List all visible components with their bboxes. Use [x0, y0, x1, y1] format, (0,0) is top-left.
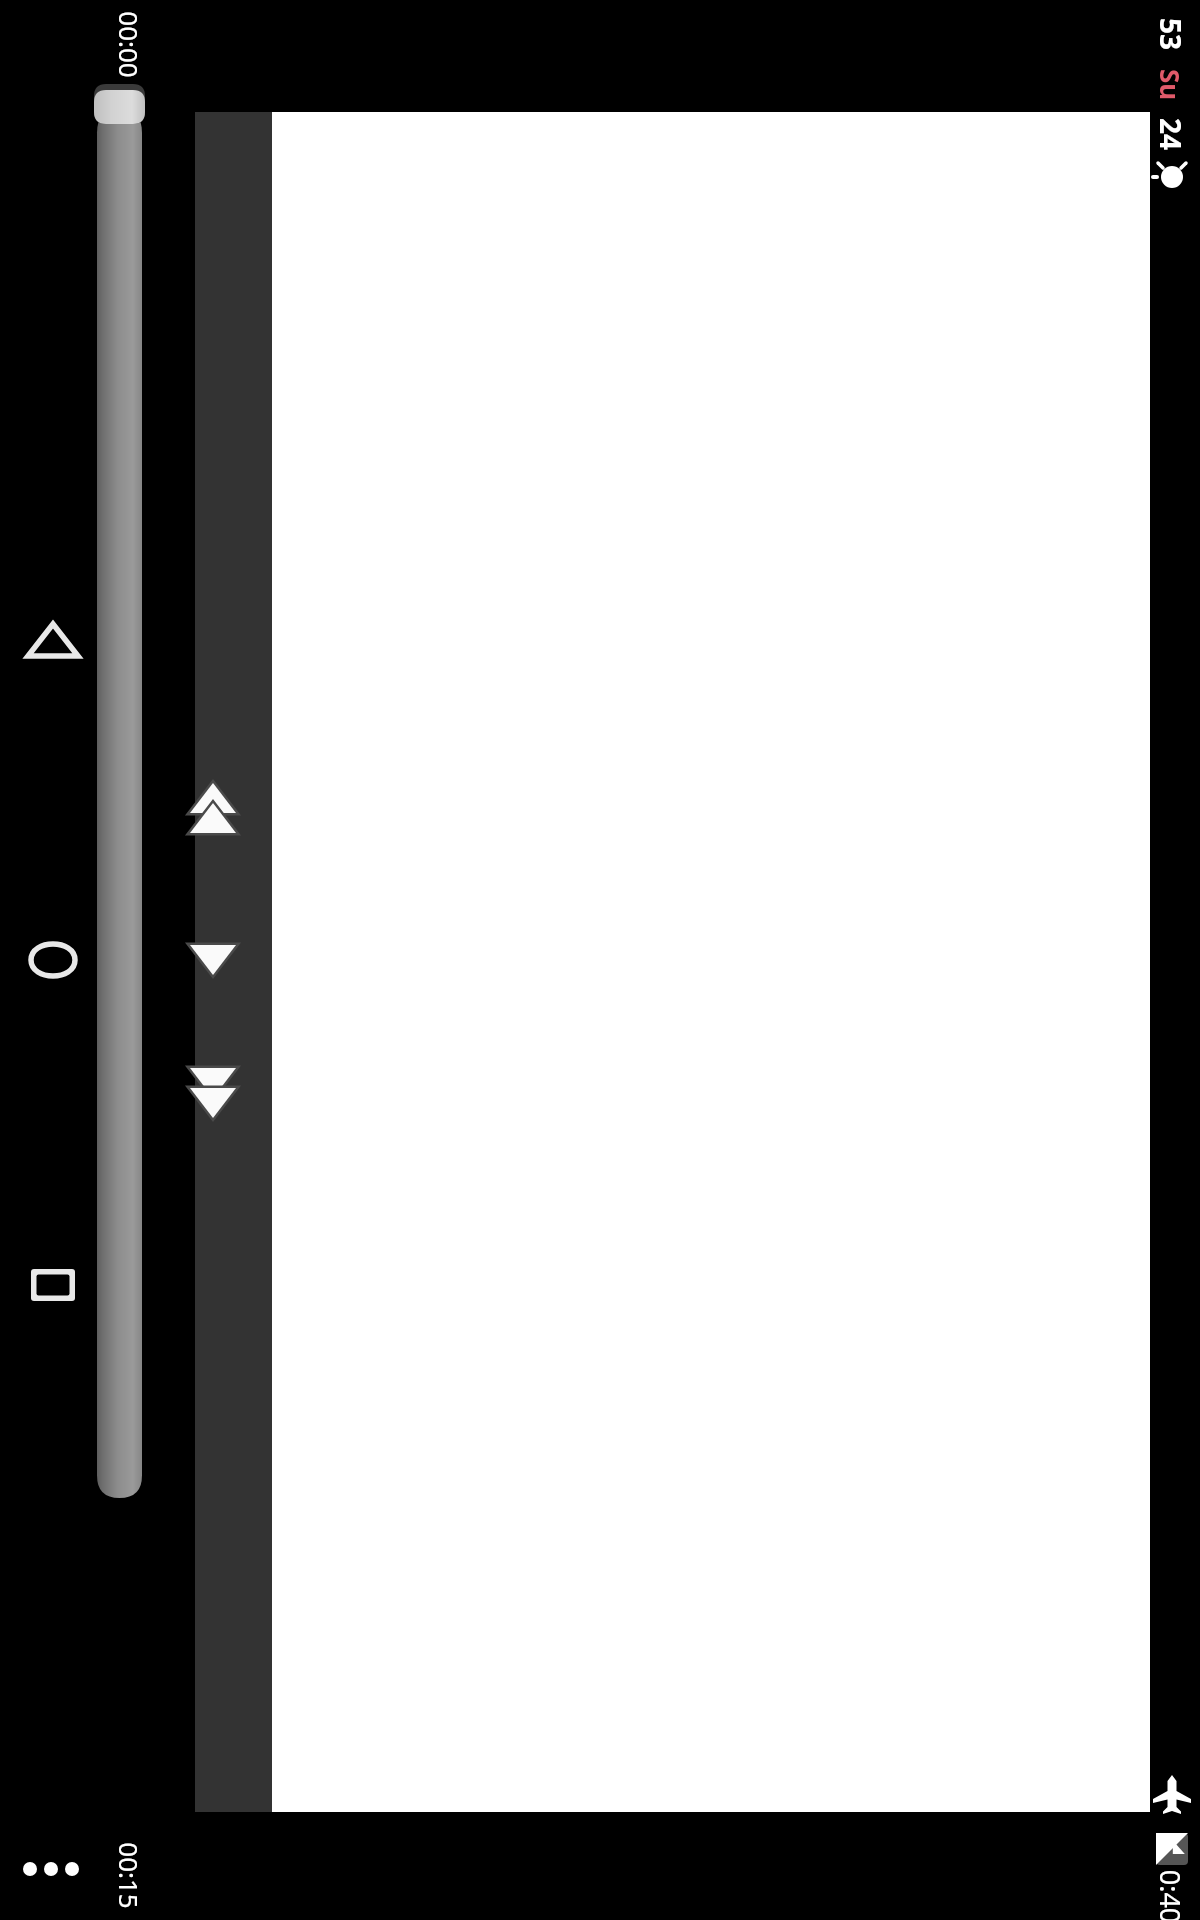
staticText: Su: [1152, 68, 1187, 100]
button[interactable]: Previous section: [177, 777, 249, 863]
staticText: 00:15: [112, 1842, 147, 1909]
other: Alarm set: [1150, 155, 1194, 199]
button[interactable]: Next section: [177, 1062, 249, 1148]
button[interactable]: Seek position: [88, 80, 172, 1510]
staticText: 24: [1151, 117, 1189, 150]
button[interactable]: Home: [8, 915, 98, 1005]
other: Airplane mode: [1148, 1770, 1196, 1818]
other: Battery: [1152, 1828, 1192, 1870]
button[interactable]: Recent apps: [8, 1240, 98, 1330]
button[interactable]: More options: [4, 1826, 96, 1912]
button[interactable]: Back: [8, 595, 98, 685]
staticText: 00:00: [112, 11, 147, 78]
staticText: 53: [1151, 17, 1189, 50]
button[interactable]: Next page: [177, 925, 249, 995]
staticText: 0:40: [1151, 1869, 1188, 1920]
